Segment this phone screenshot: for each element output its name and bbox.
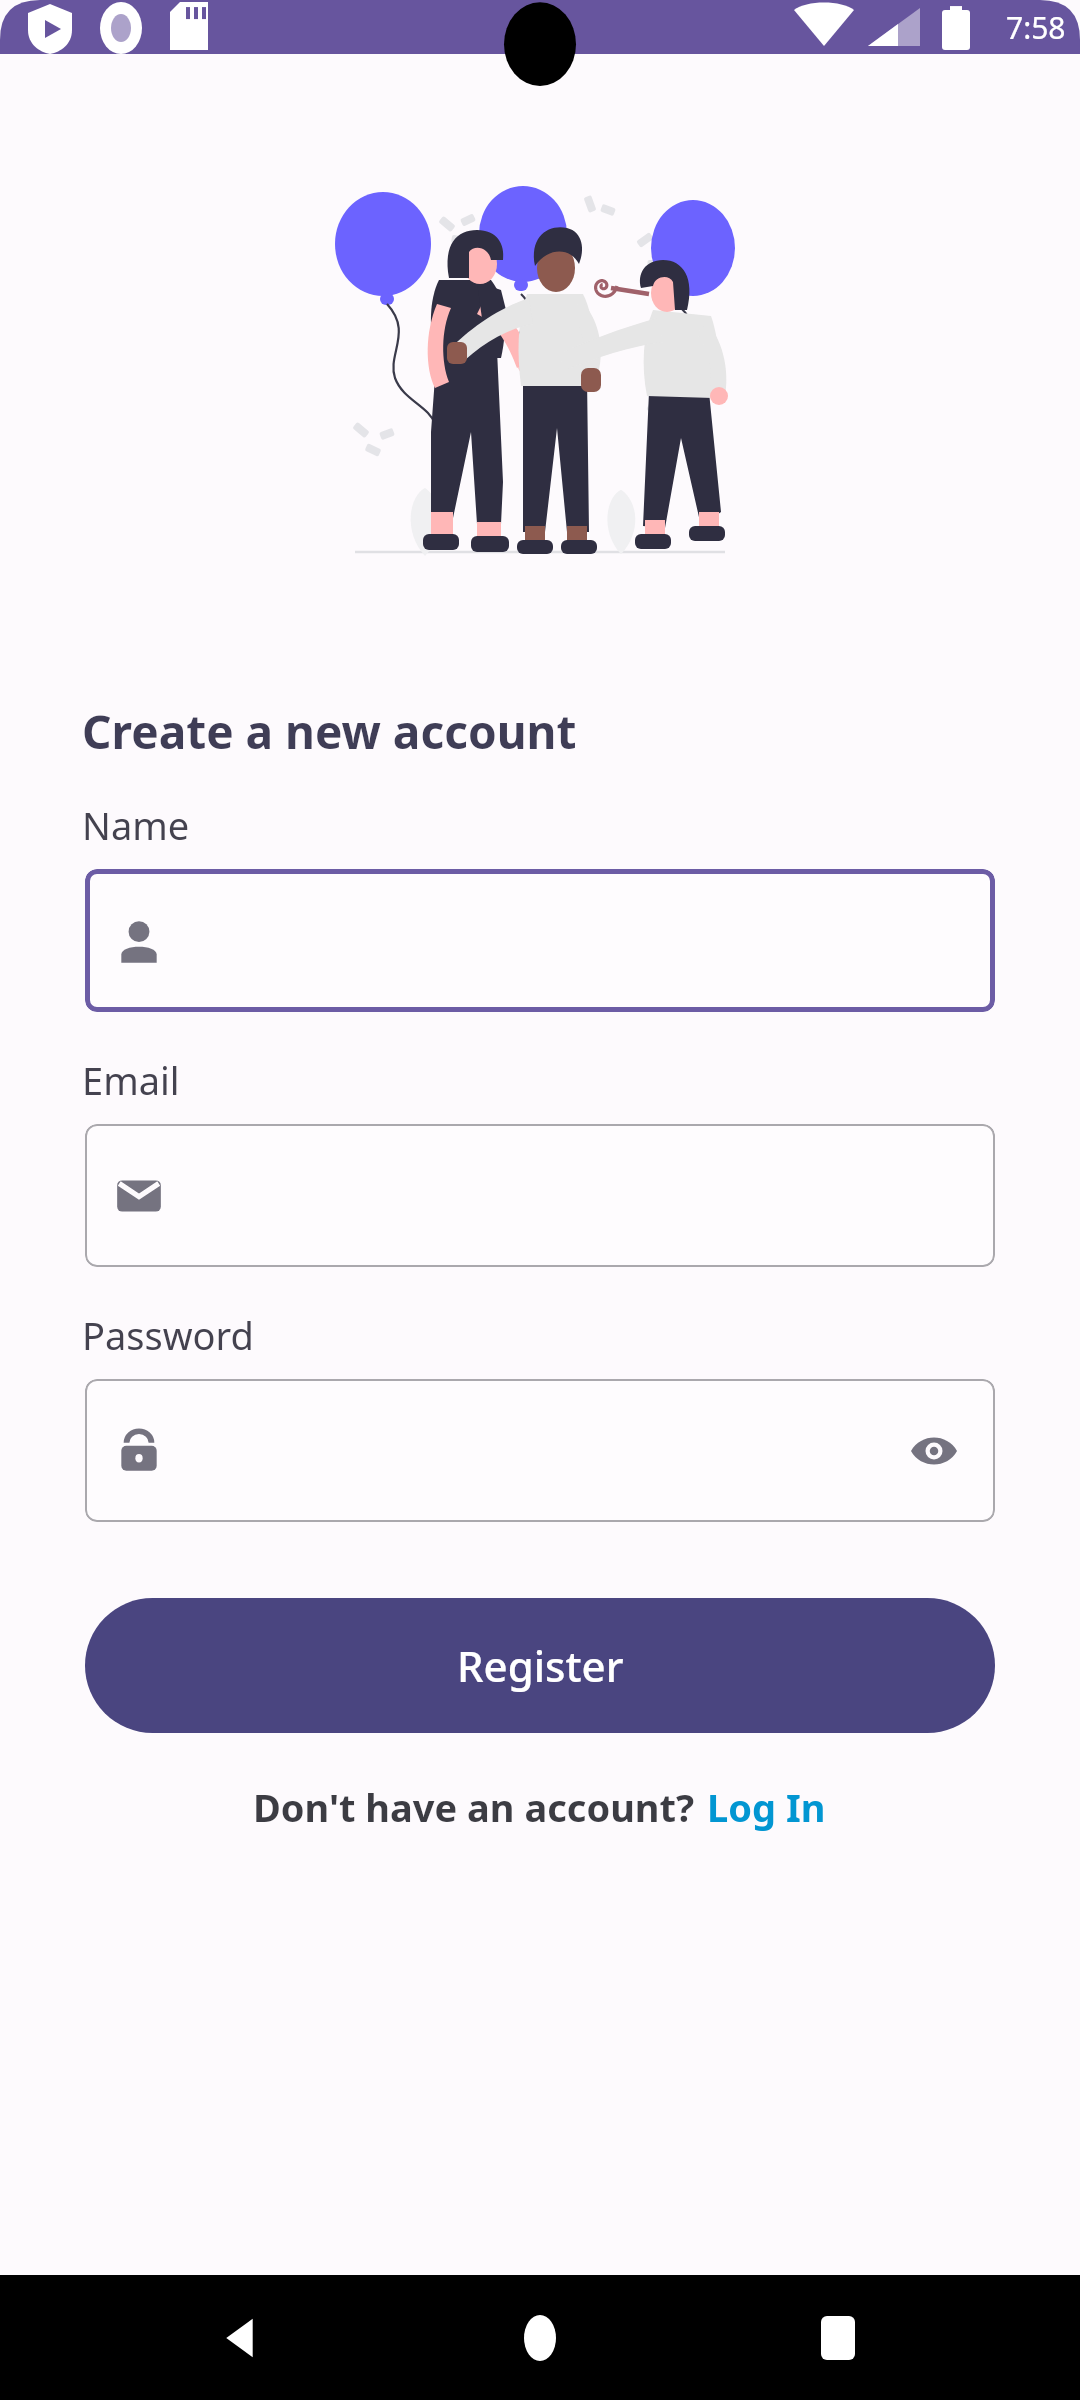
staticText: Don't have an account? bbox=[253, 1781, 705, 1833]
staticText: Email bbox=[82, 1054, 180, 1106]
button[interactable]: Name input bbox=[85, 869, 995, 1012]
button[interactable]: Log In bbox=[705, 1777, 828, 1837]
button[interactable]: Home bbox=[485, 2283, 595, 2393]
button[interactable]: Password input bbox=[85, 1379, 995, 1522]
staticText: Register bbox=[457, 1637, 624, 1694]
staticText: Password bbox=[82, 1309, 254, 1361]
staticText: Log In bbox=[707, 1781, 826, 1833]
button[interactable]: Back bbox=[188, 2283, 298, 2393]
staticText: 7:58 bbox=[1006, 7, 1066, 48]
button[interactable]: Recent apps bbox=[783, 2283, 893, 2393]
button[interactable]: Email input bbox=[85, 1124, 995, 1267]
staticText: Create a new account bbox=[82, 700, 577, 763]
staticText: Name bbox=[82, 799, 190, 851]
button[interactable]: Toggle password visibility bbox=[901, 1418, 967, 1484]
button[interactable]: Register bbox=[85, 1598, 995, 1733]
